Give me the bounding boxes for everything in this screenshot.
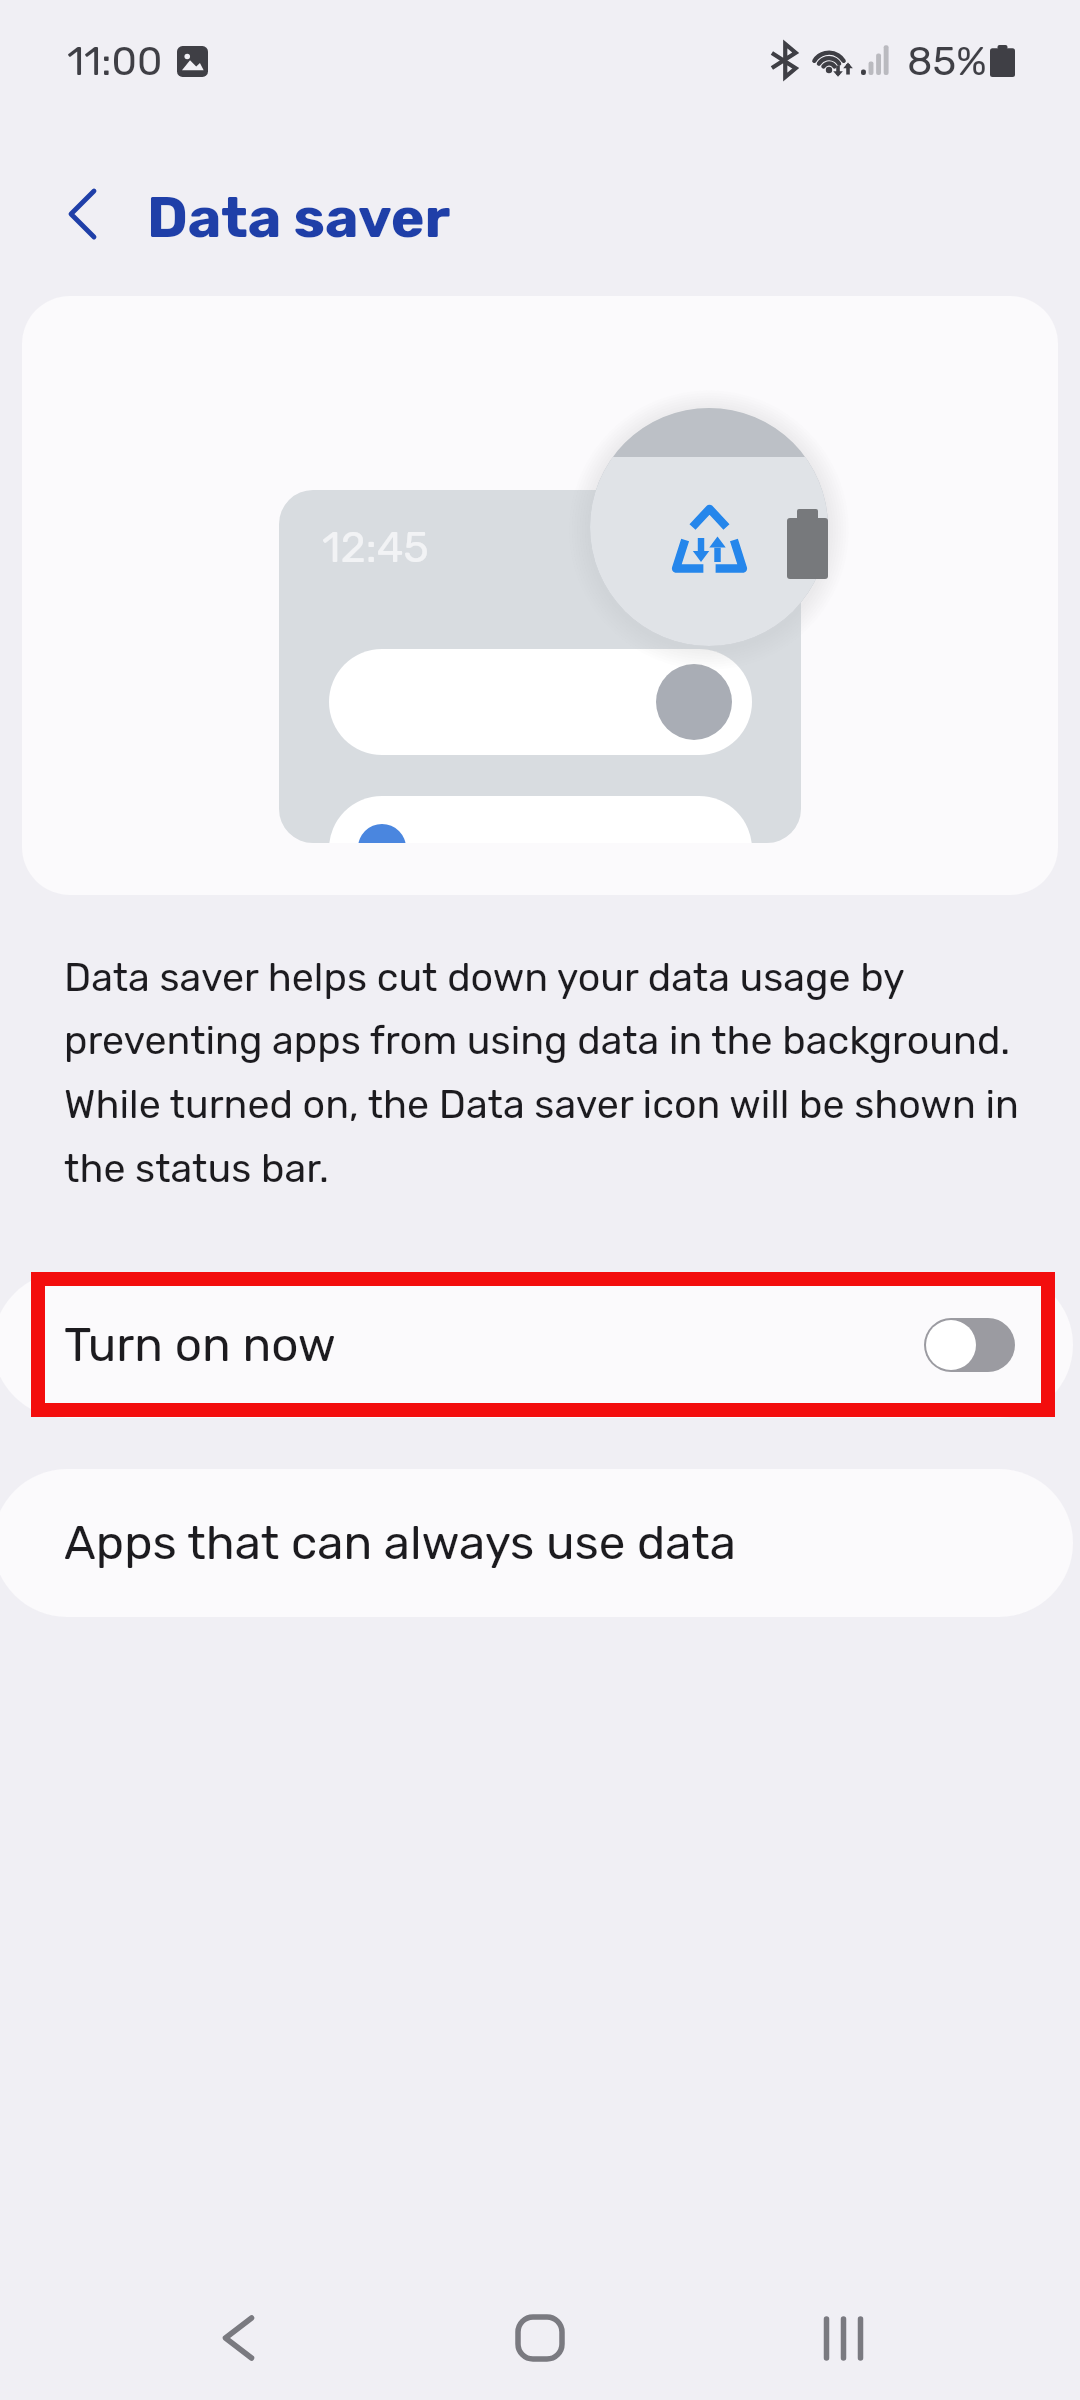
button[interactable]: Back <box>178 2278 298 2398</box>
staticText: Apps that can always use data <box>64 1515 737 1571</box>
staticText: Data saver helps cut down your data usag… <box>64 954 1024 1192</box>
staticText: 12:45 <box>322 522 429 573</box>
button[interactable]: Home <box>480 2278 600 2398</box>
button[interactable]: Turn on now <box>0 1272 1073 1418</box>
staticText: Turn on now <box>64 1317 336 1373</box>
button[interactable]: Navigate up <box>32 176 132 252</box>
button[interactable]: Apps that can always use data <box>0 1469 1073 1617</box>
staticText: 11:00 <box>67 38 163 85</box>
staticText: Data saver <box>147 184 451 252</box>
staticText: 85% <box>907 38 987 85</box>
button[interactable]: Recent apps <box>783 2278 903 2398</box>
